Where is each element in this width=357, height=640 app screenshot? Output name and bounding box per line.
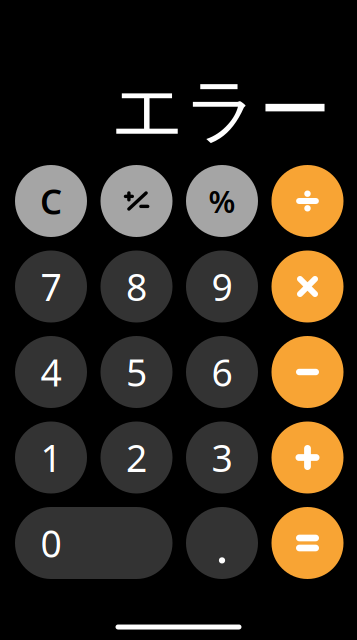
button[interactable]: % xyxy=(186,165,258,237)
button[interactable]: Multiply xyxy=(271,250,343,322)
button[interactable]: C xyxy=(15,165,87,237)
staticText: 2 xyxy=(126,433,147,482)
button[interactable]: 5 xyxy=(100,336,172,408)
button[interactable]: Equals xyxy=(271,507,343,579)
staticText: 3 xyxy=(211,433,232,482)
button[interactable]: 7 xyxy=(15,250,87,322)
staticText: エラー xyxy=(111,67,331,155)
staticText: 6 xyxy=(211,347,232,397)
button[interactable]: 2 xyxy=(100,421,172,493)
button[interactable]: 8 xyxy=(100,250,172,322)
button[interactable]: 3 xyxy=(186,421,258,493)
button[interactable]: 4 xyxy=(15,336,87,408)
button[interactable]: 6 xyxy=(186,336,258,408)
button[interactable]: Decimal point xyxy=(186,507,258,579)
button[interactable]: 9 xyxy=(186,250,258,322)
button[interactable]: Add xyxy=(271,421,343,493)
staticText: 1 xyxy=(40,433,61,482)
staticText: 5 xyxy=(126,347,147,397)
staticText: 0 xyxy=(40,518,61,568)
staticText: 9 xyxy=(211,262,232,311)
staticText: 8 xyxy=(126,262,147,311)
staticText: 7 xyxy=(40,262,61,311)
button[interactable]: Plus Minus xyxy=(100,165,172,237)
button[interactable]: 0 xyxy=(15,507,172,579)
staticText: 4 xyxy=(40,347,61,397)
button[interactable]: Divide xyxy=(271,165,343,237)
staticText: C xyxy=(40,178,62,224)
button[interactable]: 1 xyxy=(15,421,87,493)
staticText: % xyxy=(208,181,235,221)
button[interactable]: Subtract xyxy=(271,336,343,408)
